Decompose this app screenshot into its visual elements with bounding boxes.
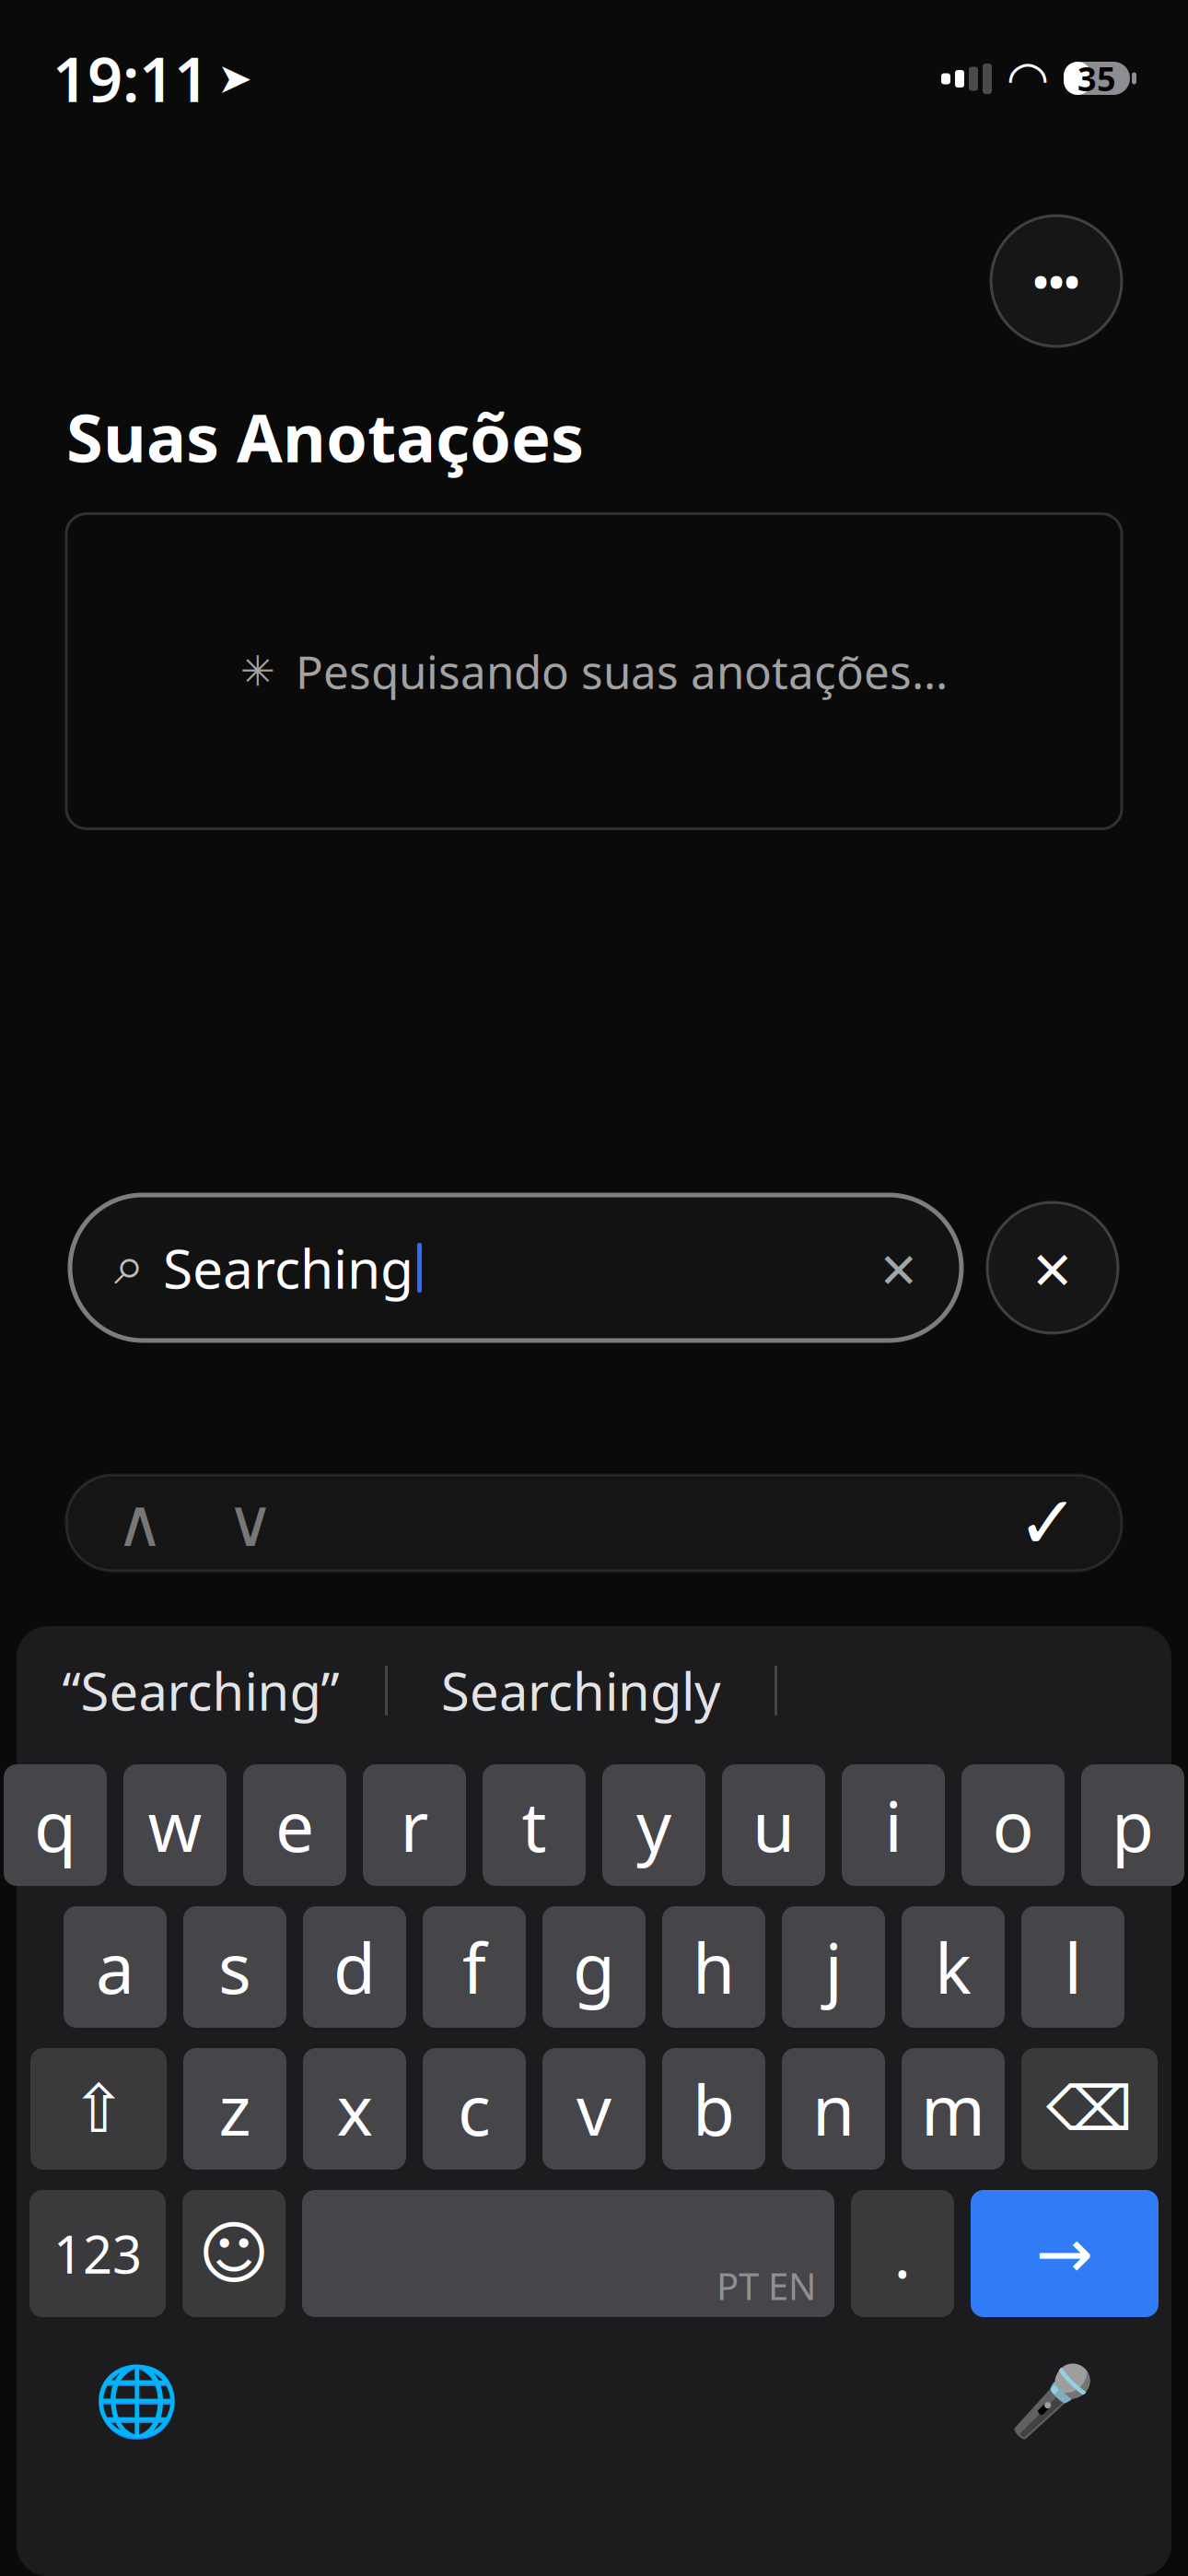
staticText: × [1033,1222,1072,1313]
button[interactable]: u [722,1764,825,1886]
button[interactable]: Mudar teclado [81,2350,192,2452]
button[interactable]: “Searching” [17,1640,385,1741]
button[interactable]: q [4,1764,107,1886]
button[interactable]: j [782,1906,885,2028]
button[interactable]: Concluído [993,1477,1103,1569]
staticText: s [218,1921,251,2013]
staticText: v [577,2063,611,2155]
staticText: Pesquisando suas anotações... [296,641,948,701]
staticText: 35 [1077,56,1116,100]
button[interactable]: i [842,1764,945,1886]
staticText: × [880,1225,917,1310]
button[interactable]: k [902,1906,1005,2028]
staticText: ◠ [1009,50,1047,106]
staticText: 19:11 [52,37,209,119]
staticText: f [462,1921,486,2013]
staticText: r [400,1779,429,1871]
button[interactable]: o [961,1764,1065,1886]
staticText: Searchingly [441,1656,721,1725]
button[interactable]: p [1081,1764,1184,1886]
staticText: 123 [53,2219,142,2288]
staticText: ☺ [198,2214,270,2293]
staticText: c [458,2063,491,2155]
button[interactable]: n [782,2048,885,2170]
staticText: z [219,2063,251,2155]
staticText: b [693,2063,735,2155]
button[interactable]: m [902,2048,1005,2170]
staticText: u [752,1779,795,1871]
staticText: m [921,2063,985,2155]
button[interactable]: y [602,1764,705,1886]
button[interactable]: e [243,1764,346,1886]
staticText: ∧ [116,1485,164,1561]
button[interactable]: f [423,1906,526,2028]
staticText: q [34,1779,76,1871]
staticText: PT EN [716,2261,816,2310]
button[interactable]: l [1021,1906,1124,2028]
staticText: g [573,1921,615,2013]
staticText: w [148,1779,202,1871]
button[interactable]: r [363,1764,466,1886]
staticText: o [992,1779,1034,1871]
staticText: y [636,1779,671,1871]
button[interactable]: g [542,1906,646,2028]
staticText: d [333,1921,376,2013]
staticText: ✓ [1017,1481,1079,1565]
staticText: a [96,1921,134,2013]
staticText: . [894,2211,911,2296]
button[interactable]: ⇧ [30,2048,167,2170]
button[interactable]: d [303,1906,406,2028]
button[interactable]: Mais opções [991,216,1122,346]
button[interactable]: t [483,1764,586,1886]
staticText: l [1064,1921,1082,2013]
button[interactable]: ⌫ [1021,2048,1158,2170]
button[interactable]: Próximo resultado [195,1477,306,1569]
button[interactable]: ☺ [182,2190,285,2317]
staticText: ⌫ [1046,2074,1133,2144]
staticText: n [812,2063,855,2155]
staticText: x [337,2063,373,2155]
staticText: i [885,1779,902,1871]
button[interactable]: Searchingly [388,1640,775,1741]
button[interactable]: b [662,2048,765,2170]
staticText: Suas Anotações [66,392,584,481]
staticText: ⇧ [71,2071,126,2146]
button[interactable]: PT EN [302,2190,834,2317]
staticText: 🌐 [93,2362,179,2440]
staticText: p [1112,1779,1154,1871]
button[interactable]: w [123,1764,227,1886]
button[interactable]: → [971,2190,1159,2317]
button[interactable]: x [303,2048,406,2170]
button[interactable]: c [423,2048,526,2170]
staticText: → [1036,2214,1094,2293]
staticText: “Searching” [62,1656,339,1725]
button[interactable]: s [183,1906,286,2028]
button[interactable]: a [64,1906,167,2028]
staticText: ⌕ [114,1241,145,1294]
button[interactable]: h [662,1906,765,2028]
button[interactable]: 123 [29,2190,166,2317]
button[interactable]: Resultado anterior [85,1477,195,1569]
staticText: ∨ [226,1485,275,1561]
staticText: Searching [163,1232,413,1304]
staticText: ••• [1033,253,1080,309]
button[interactable]: ⌕ [70,1195,961,1341]
staticText: j [825,1921,842,2013]
button[interactable]: z [183,2048,286,2170]
button[interactable]: Ditado [996,2350,1107,2452]
staticText: t [522,1779,547,1871]
staticText: e [275,1779,314,1871]
button[interactable]: Fechar busca [987,1202,1118,1333]
staticText: ➤ [217,55,252,102]
button[interactable]: v [542,2048,646,2170]
staticText: h [693,1921,735,2013]
staticText: 🎤 [1009,2362,1095,2440]
button[interactable]: . [851,2190,954,2317]
staticText: k [935,1921,972,2013]
staticText: ✳ [240,648,275,695]
